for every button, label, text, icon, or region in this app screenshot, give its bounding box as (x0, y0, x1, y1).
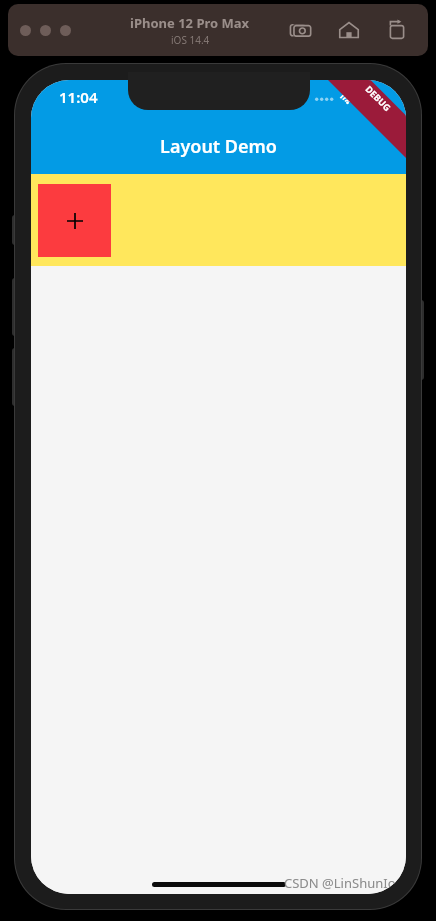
staticText: DEBUG (363, 83, 394, 113)
staticText: 11:04 (59, 87, 98, 107)
staticText: Layout Demo (160, 134, 277, 159)
button[interactable]: Add (38, 184, 111, 257)
button[interactable] (60, 25, 71, 36)
staticText: CSDN @LinShunIos (284, 874, 402, 892)
button[interactable]: Rotate (384, 17, 410, 43)
button[interactable] (40, 25, 51, 36)
button[interactable]: Screenshot (288, 17, 314, 43)
staticText: iOS 14.4 (171, 33, 210, 47)
button[interactable]: Home (336, 17, 362, 43)
button[interactable] (20, 25, 31, 36)
staticText: iPhone 12 Pro Max (130, 14, 250, 32)
